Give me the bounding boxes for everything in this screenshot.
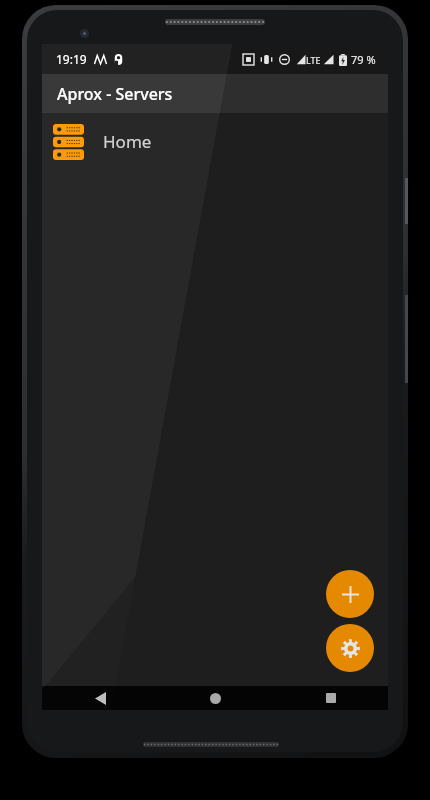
button[interactable]: Recent apps	[273, 686, 388, 710]
button[interactable]: Home	[158, 686, 273, 710]
button[interactable]: Add server	[326, 570, 374, 618]
button[interactable]: Back	[42, 686, 158, 710]
staticText: Home	[103, 130, 152, 153]
staticText: 19:19	[56, 51, 87, 67]
staticText: Aprox - Servers	[57, 83, 173, 105]
staticText: LTE	[306, 54, 321, 66]
button[interactable]: Home	[42, 113, 388, 170]
staticText: 79 %	[351, 52, 376, 67]
button[interactable]: Settings	[326, 624, 374, 672]
